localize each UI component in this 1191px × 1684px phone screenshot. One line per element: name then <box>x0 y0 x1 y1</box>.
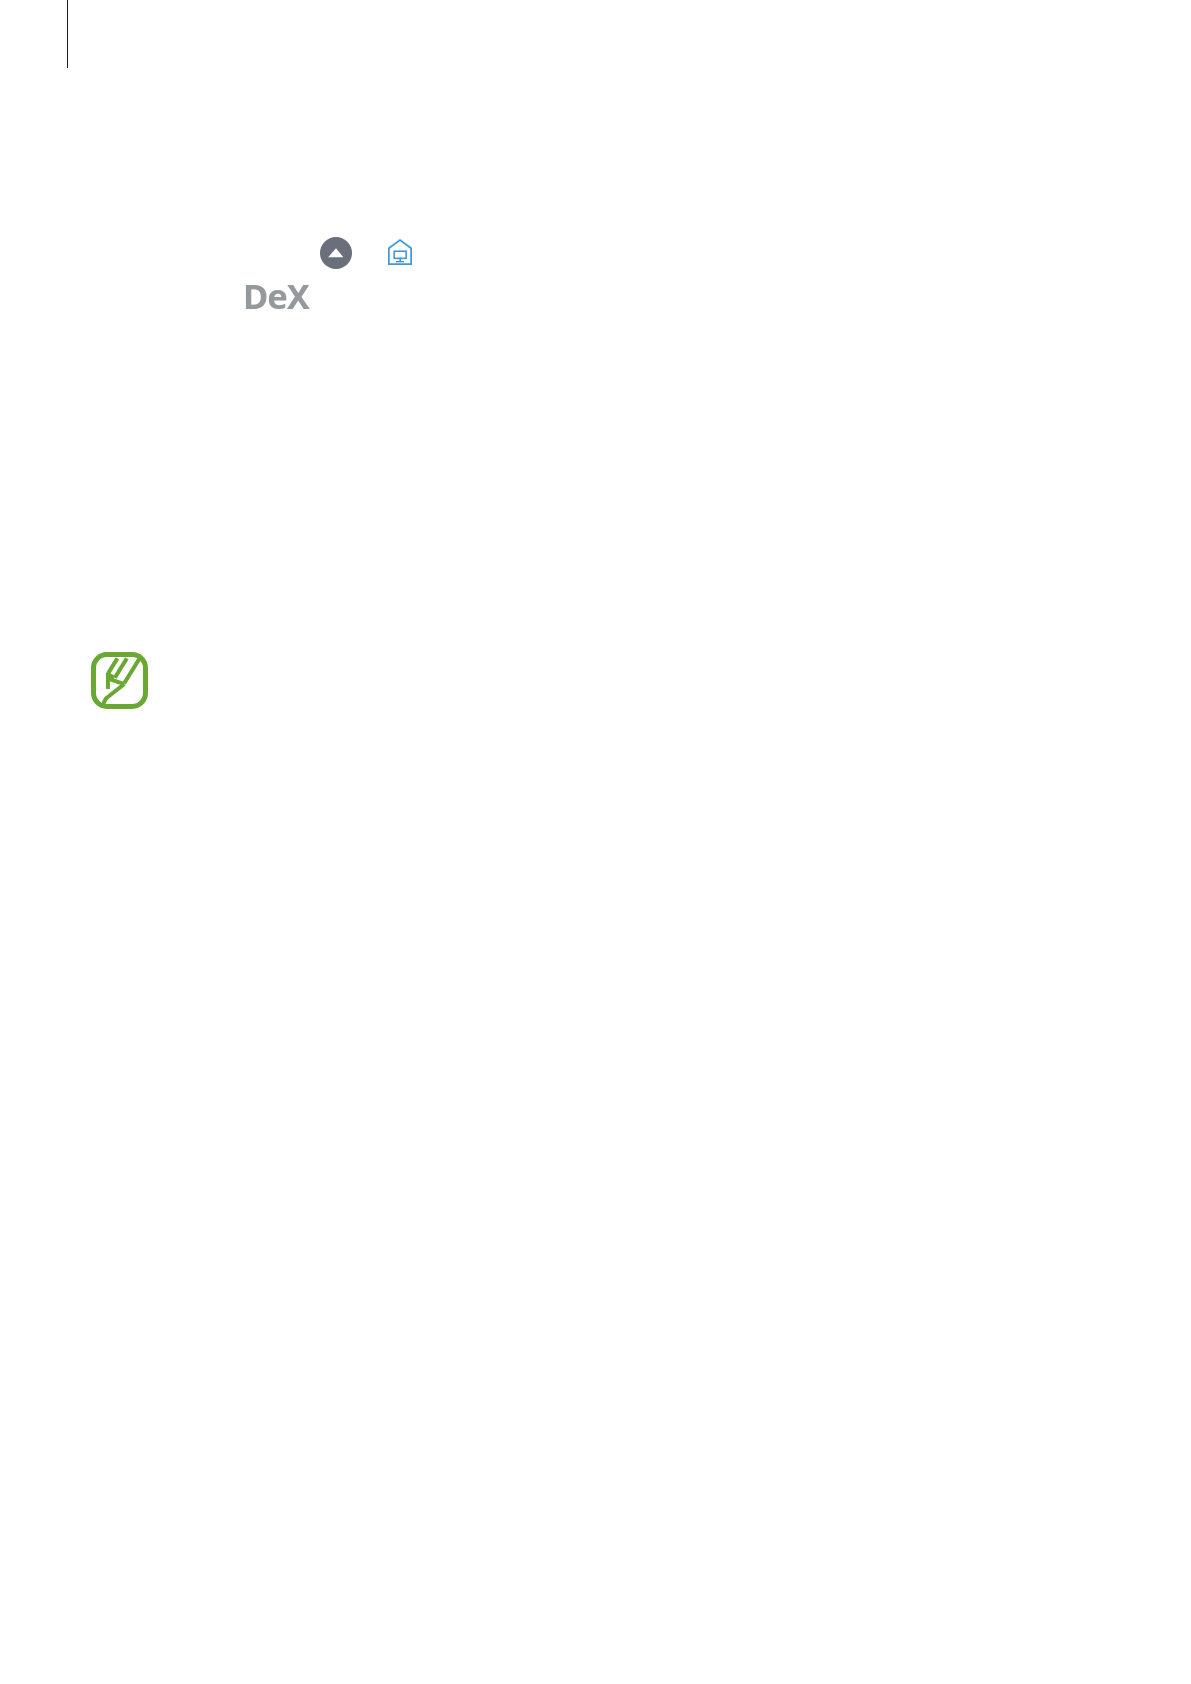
button[interactable]: Enter DeX mode <box>320 237 352 269</box>
button[interactable]: Samsung Notes <box>91 652 148 709</box>
staticText: DeX <box>243 272 309 319</box>
button[interactable]: DeX home <box>388 239 412 265</box>
